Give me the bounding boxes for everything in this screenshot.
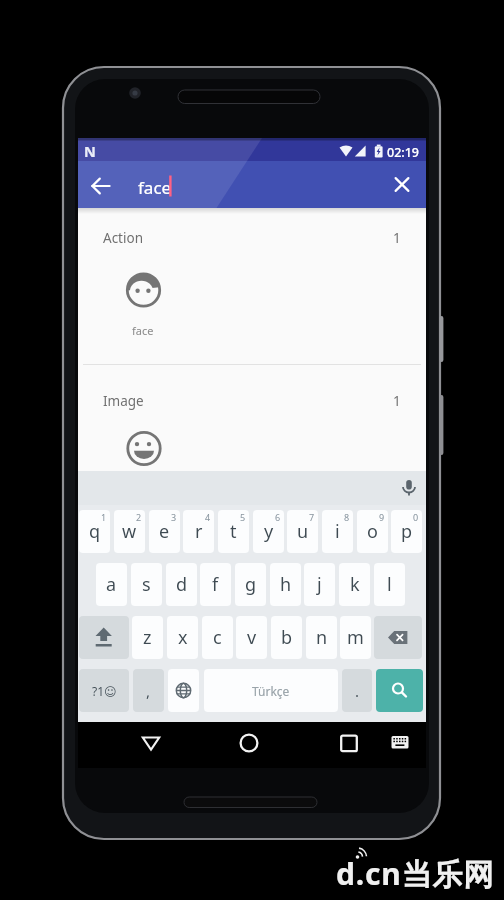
button[interactable]: h (270, 563, 301, 606)
button[interactable]: m (340, 616, 371, 659)
button[interactable]: , (133, 669, 164, 712)
staticText: 0 (413, 511, 419, 523)
button[interactable] (376, 669, 423, 712)
staticText: 2 (136, 511, 142, 523)
staticText: Action (103, 229, 143, 247)
staticText: w (122, 519, 137, 544)
button[interactable]: y (253, 510, 284, 553)
staticText: o (367, 519, 378, 544)
button[interactable]: b (271, 616, 302, 659)
button[interactable]: q (79, 510, 110, 553)
button[interactable] (118, 264, 170, 316)
staticText: 1 (393, 392, 401, 410)
button[interactable] (388, 170, 416, 198)
button[interactable]: w (114, 510, 145, 553)
staticText: face (138, 176, 172, 199)
staticText: Image (103, 392, 144, 410)
staticText: k (350, 572, 360, 597)
button[interactable] (374, 616, 422, 659)
button[interactable]: j (304, 563, 335, 606)
button[interactable]: k (339, 563, 370, 606)
button[interactable] (233, 727, 265, 759)
staticText: p (401, 519, 413, 544)
staticText: 02:19 (387, 144, 420, 161)
staticText: y (264, 519, 274, 544)
button[interactable] (135, 727, 167, 759)
button[interactable]: c (202, 616, 233, 659)
button[interactable]: a (96, 563, 127, 606)
staticText: i (335, 519, 340, 544)
button[interactable]: o (357, 510, 388, 553)
button[interactable]: n (306, 616, 337, 659)
button[interactable] (86, 171, 116, 201)
staticText: q (89, 519, 101, 544)
staticText: ?1☺ (92, 683, 117, 699)
staticText: c (213, 625, 222, 650)
staticText: , (146, 681, 151, 701)
staticText: n (316, 625, 328, 650)
staticText: 4 (205, 511, 211, 523)
button[interactable]: . (342, 669, 372, 712)
button[interactable]: p (391, 510, 422, 553)
button[interactable] (333, 727, 365, 759)
staticText: N (84, 141, 96, 161)
button[interactable] (387, 730, 413, 756)
staticText: u (297, 519, 309, 544)
staticText: l (387, 572, 392, 597)
button[interactable]: f (200, 563, 231, 606)
button[interactable]: r (183, 510, 214, 553)
staticText: 6 (275, 511, 281, 523)
staticText: g (245, 572, 257, 597)
staticText: e (159, 519, 170, 544)
staticText: x (178, 625, 188, 650)
staticText: d (176, 572, 188, 597)
staticText: r (195, 519, 203, 544)
staticText: b (281, 625, 293, 650)
staticText: 8 (344, 511, 350, 523)
button[interactable] (118, 422, 170, 474)
button[interactable]: Türkçe (204, 669, 338, 712)
staticText: v (247, 625, 257, 650)
staticText: 1 (393, 229, 401, 247)
staticText: d.cn当乐网 (336, 853, 494, 894)
staticText: j (317, 572, 322, 597)
staticText: 5 (240, 511, 246, 523)
staticText: . (355, 681, 360, 701)
staticText: m (347, 625, 364, 650)
staticText: 1 (101, 511, 107, 523)
button[interactable] (79, 616, 129, 659)
button[interactable]: u (287, 510, 318, 553)
button[interactable]: g (235, 563, 266, 606)
button[interactable]: v (236, 616, 267, 659)
button[interactable]: i (322, 510, 353, 553)
button[interactable]: s (131, 563, 162, 606)
staticText: face (132, 323, 154, 338)
button[interactable]: z (132, 616, 163, 659)
button[interactable]: l (374, 563, 405, 606)
staticText: s (142, 572, 151, 597)
staticText: Türkçe (252, 683, 290, 699)
staticText: h (280, 572, 292, 597)
staticText: f (212, 572, 219, 597)
button[interactable]: x (167, 616, 198, 659)
button[interactable]: t (218, 510, 249, 553)
staticText: 7 (309, 511, 315, 523)
button[interactable]: ?1☺ (79, 669, 129, 712)
staticText: t (230, 519, 237, 544)
staticText: 9 (379, 511, 385, 523)
staticText: 3 (171, 511, 177, 523)
button[interactable]: e (149, 510, 180, 553)
staticText: z (143, 625, 152, 650)
staticText: a (106, 572, 117, 597)
button[interactable]: d (166, 563, 197, 606)
button[interactable] (168, 669, 199, 712)
